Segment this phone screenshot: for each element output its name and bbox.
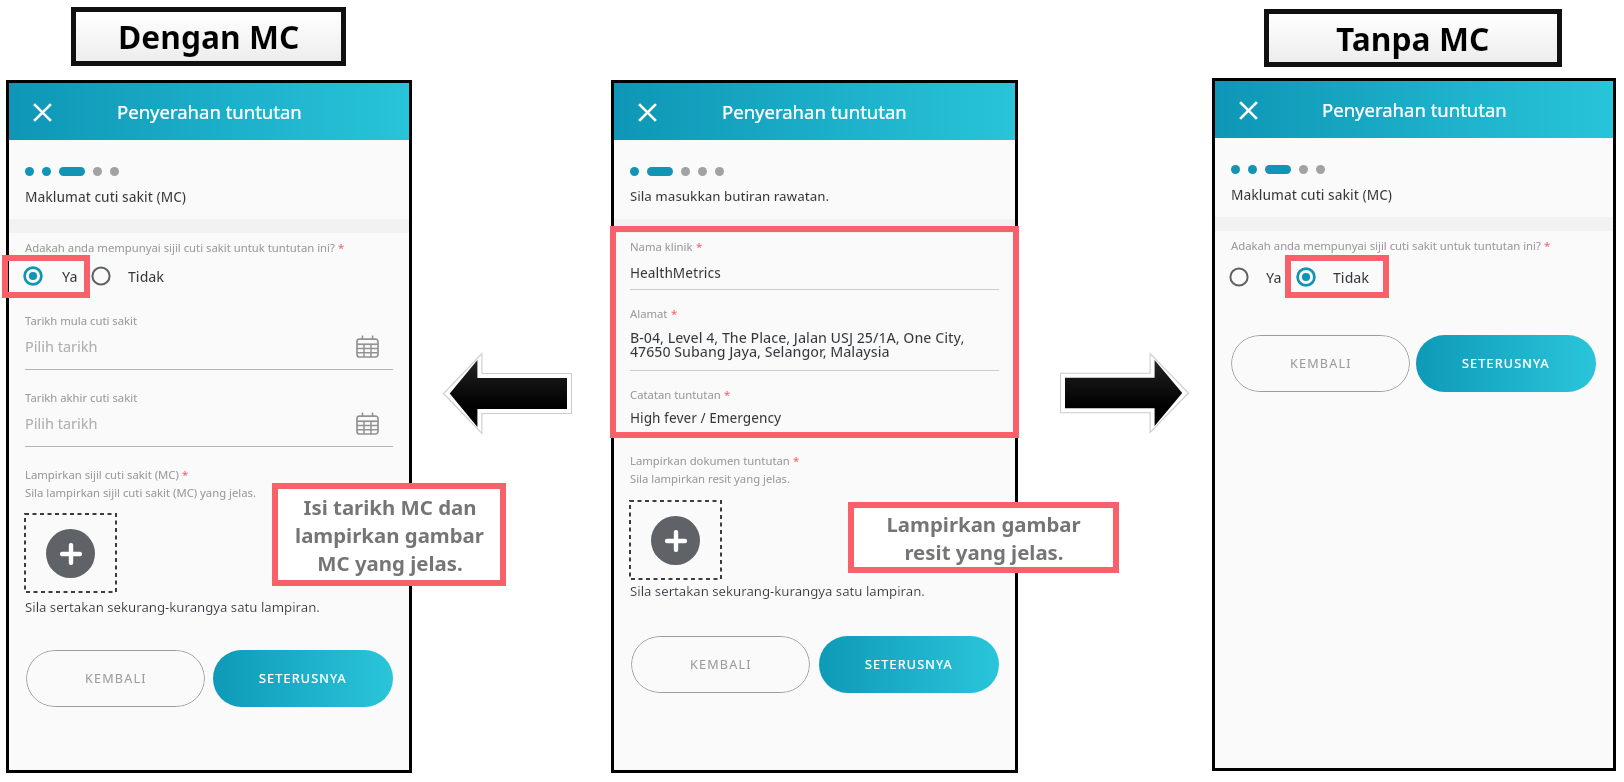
staticText: resit yang jelas. [904, 538, 1064, 566]
other: Pick date [356, 412, 379, 435]
button[interactable]: Add attachment [25, 514, 116, 592]
button[interactable]: Ya [23, 266, 78, 286]
staticText: Sila sertakan sekurang-kurangya satu lam… [630, 582, 925, 600]
button[interactable]: Close [630, 95, 664, 129]
button[interactable]: SETERUSNYA [819, 636, 999, 693]
staticText: lampirkan gambar [295, 521, 484, 549]
staticText: SETERUSNYA [1462, 355, 1550, 372]
staticText: * [179, 467, 189, 482]
staticText: SETERUSNYA [865, 656, 953, 673]
staticText: Sila masukkan butiran rawatan. [630, 187, 830, 205]
button[interactable]: Tarikh mula cuti sakit [25, 313, 393, 379]
staticText: Penyerahan tuntutan [1322, 97, 1507, 122]
staticText: Pilih tarikh [25, 336, 98, 356]
staticText: Dengan MC [118, 15, 300, 58]
staticText: HealthMetrics [630, 264, 721, 282]
staticText: SETERUSNYA [259, 670, 347, 687]
button[interactable]: Ya [1229, 267, 1282, 287]
staticText: * [693, 239, 703, 254]
staticText: * [668, 306, 678, 321]
staticText: Sila lampirkan resit yang jelas. [630, 471, 791, 486]
staticText: MC yang jelas. [317, 549, 463, 577]
button[interactable]: Close [1231, 93, 1265, 127]
staticText: * [335, 240, 345, 255]
staticText: Tidak [128, 267, 165, 286]
staticText: Catatan tuntutan [630, 387, 721, 402]
button[interactable]: KEMBALI [631, 636, 810, 693]
staticText: * [721, 387, 731, 402]
staticText: KEMBALI [1290, 355, 1352, 372]
staticText: Lampirkan sijil cuti sakit (MC) [25, 467, 179, 482]
staticText: Tidak [1333, 268, 1370, 287]
staticText: Lampirkan gambar [886, 510, 1081, 538]
staticText: Tarikh akhir cuti sakit [25, 390, 138, 405]
button[interactable]: Add attachment [630, 501, 721, 579]
staticText: Penyerahan tuntutan [117, 99, 302, 124]
staticText: Maklumat cuti sakit (MC) [1231, 185, 1393, 204]
button[interactable]: Close [25, 95, 59, 129]
staticText: Tanpa MC [1336, 17, 1490, 60]
staticText: Penyerahan tuntutan [722, 99, 907, 124]
staticText: Sila sertakan sekurang-kurangya satu lam… [25, 598, 320, 616]
staticText: Tarikh mula cuti sakit [25, 313, 138, 328]
button[interactable]: Tidak [91, 266, 165, 286]
button[interactable]: KEMBALI [1231, 335, 1410, 392]
staticText: Ya [1266, 268, 1282, 287]
staticText: Nama klinik [630, 239, 693, 254]
staticText: * [1541, 238, 1551, 253]
staticText: Ya [62, 267, 78, 286]
staticText: KEMBALI [690, 656, 752, 673]
staticText: * [790, 453, 800, 468]
staticText: Maklumat cuti sakit (MC) [25, 187, 187, 206]
staticText: High fever / Emergency [630, 409, 782, 427]
staticText: Sila lampirkan sijil cuti sakit (MC) yan… [25, 485, 257, 500]
staticText: Lampirkan dokumen tuntutan [630, 453, 790, 468]
other: Pick date [356, 335, 379, 358]
staticText: Pilih tarikh [25, 413, 98, 433]
staticText: B-04, Level 4, The Place, Jalan USJ 25/1… [630, 328, 965, 361]
staticText: Alamat [630, 306, 668, 321]
button[interactable]: Tidak [1296, 267, 1370, 287]
button[interactable]: SETERUSNYA [1416, 335, 1596, 392]
staticText: Adakah anda mempunyai sijil cuti sakit u… [1231, 238, 1541, 253]
staticText: Isi tarikh MC dan [303, 493, 477, 521]
button[interactable]: KEMBALI [26, 650, 205, 707]
button[interactable]: Tarikh akhir cuti sakit [25, 390, 393, 456]
staticText: Adakah anda mempunyai sijil cuti sakit u… [25, 240, 335, 255]
button[interactable]: SETERUSNYA [213, 650, 393, 707]
staticText: KEMBALI [85, 670, 147, 687]
